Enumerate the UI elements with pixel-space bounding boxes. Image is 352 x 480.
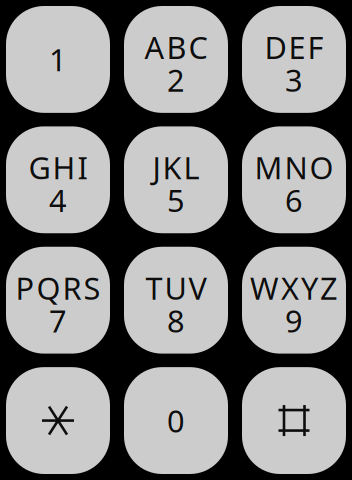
staticText: 7 — [49, 300, 67, 341]
button[interactable]: 6 M N O — [242, 126, 346, 233]
button[interactable]: 8 T U V — [124, 247, 228, 354]
staticText: TUV — [145, 267, 206, 308]
staticText: 8 — [167, 300, 185, 341]
staticText: 3 — [285, 59, 303, 100]
staticText: JKL — [152, 147, 199, 188]
button[interactable]: 2 A B C — [124, 6, 228, 113]
staticText: WXYZ — [250, 267, 338, 308]
staticText: ABC — [144, 27, 207, 67]
staticText: 9 — [285, 300, 303, 341]
staticText: 1 — [49, 39, 67, 80]
button[interactable]: 0 — [124, 367, 228, 474]
staticText: 4 — [49, 180, 67, 220]
staticText: MNO — [254, 147, 333, 188]
staticText: 6 — [285, 180, 303, 220]
button[interactable]: Star — [6, 367, 110, 474]
button[interactable]: 7 P Q R S — [6, 247, 110, 354]
button[interactable]: 1 — [6, 6, 110, 113]
staticText: 2 — [167, 59, 185, 100]
staticText: 5 — [167, 180, 185, 220]
staticText: 0 — [167, 400, 185, 441]
button[interactable]: Pound — [242, 367, 346, 474]
button[interactable]: 3 D E F — [242, 6, 346, 113]
button[interactable]: 4 G H I — [6, 126, 110, 233]
staticText: DEF — [264, 27, 323, 67]
button[interactable]: 5 J K L — [124, 126, 228, 233]
staticText: PQRS — [15, 267, 100, 308]
staticText: GHI — [28, 147, 87, 188]
button[interactable]: 9 W X Y Z — [242, 247, 346, 354]
